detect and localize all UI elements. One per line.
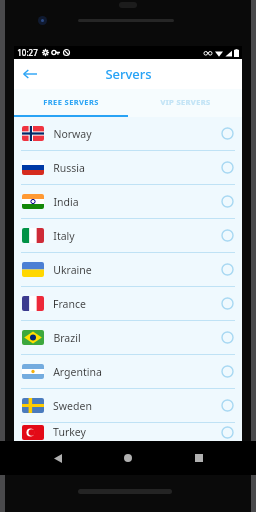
button[interactable]: Recents [186, 445, 212, 471]
button[interactable]: Sweden [14, 389, 242, 422]
staticText: 10:27 [17, 47, 38, 58]
staticText: Italy [53, 229, 75, 243]
staticText: Norway [53, 127, 92, 141]
button[interactable]: FREE SERVERS [14, 89, 128, 115]
staticText: Servers [105, 65, 152, 83]
staticText: Ukraine [53, 263, 92, 277]
staticText: VIP SERVERS [160, 97, 211, 107]
button[interactable]: Argentina [14, 355, 242, 388]
staticText: Brazil [53, 331, 81, 345]
button[interactable]: Back [18, 62, 42, 86]
staticText: France [53, 297, 86, 311]
staticText: Sweden [53, 399, 92, 413]
button[interactable]: Brazil [14, 321, 242, 354]
button[interactable]: Home [115, 445, 141, 471]
staticText: FREE SERVERS [43, 97, 99, 107]
button[interactable]: Norway [14, 117, 242, 150]
button[interactable]: VIP SERVERS [128, 89, 242, 115]
button[interactable]: France [14, 287, 242, 320]
button[interactable]: Italy [14, 219, 242, 252]
button[interactable]: Turkey [14, 423, 242, 441]
staticText: India [53, 195, 79, 209]
button[interactable]: Ukraine [14, 253, 242, 286]
button[interactable]: India [14, 185, 242, 218]
button[interactable]: Back [45, 445, 71, 471]
staticText: Turkey [53, 425, 86, 439]
staticText: Argentina [53, 365, 102, 379]
staticText: Russia [53, 161, 85, 175]
button[interactable]: Russia [14, 151, 242, 184]
